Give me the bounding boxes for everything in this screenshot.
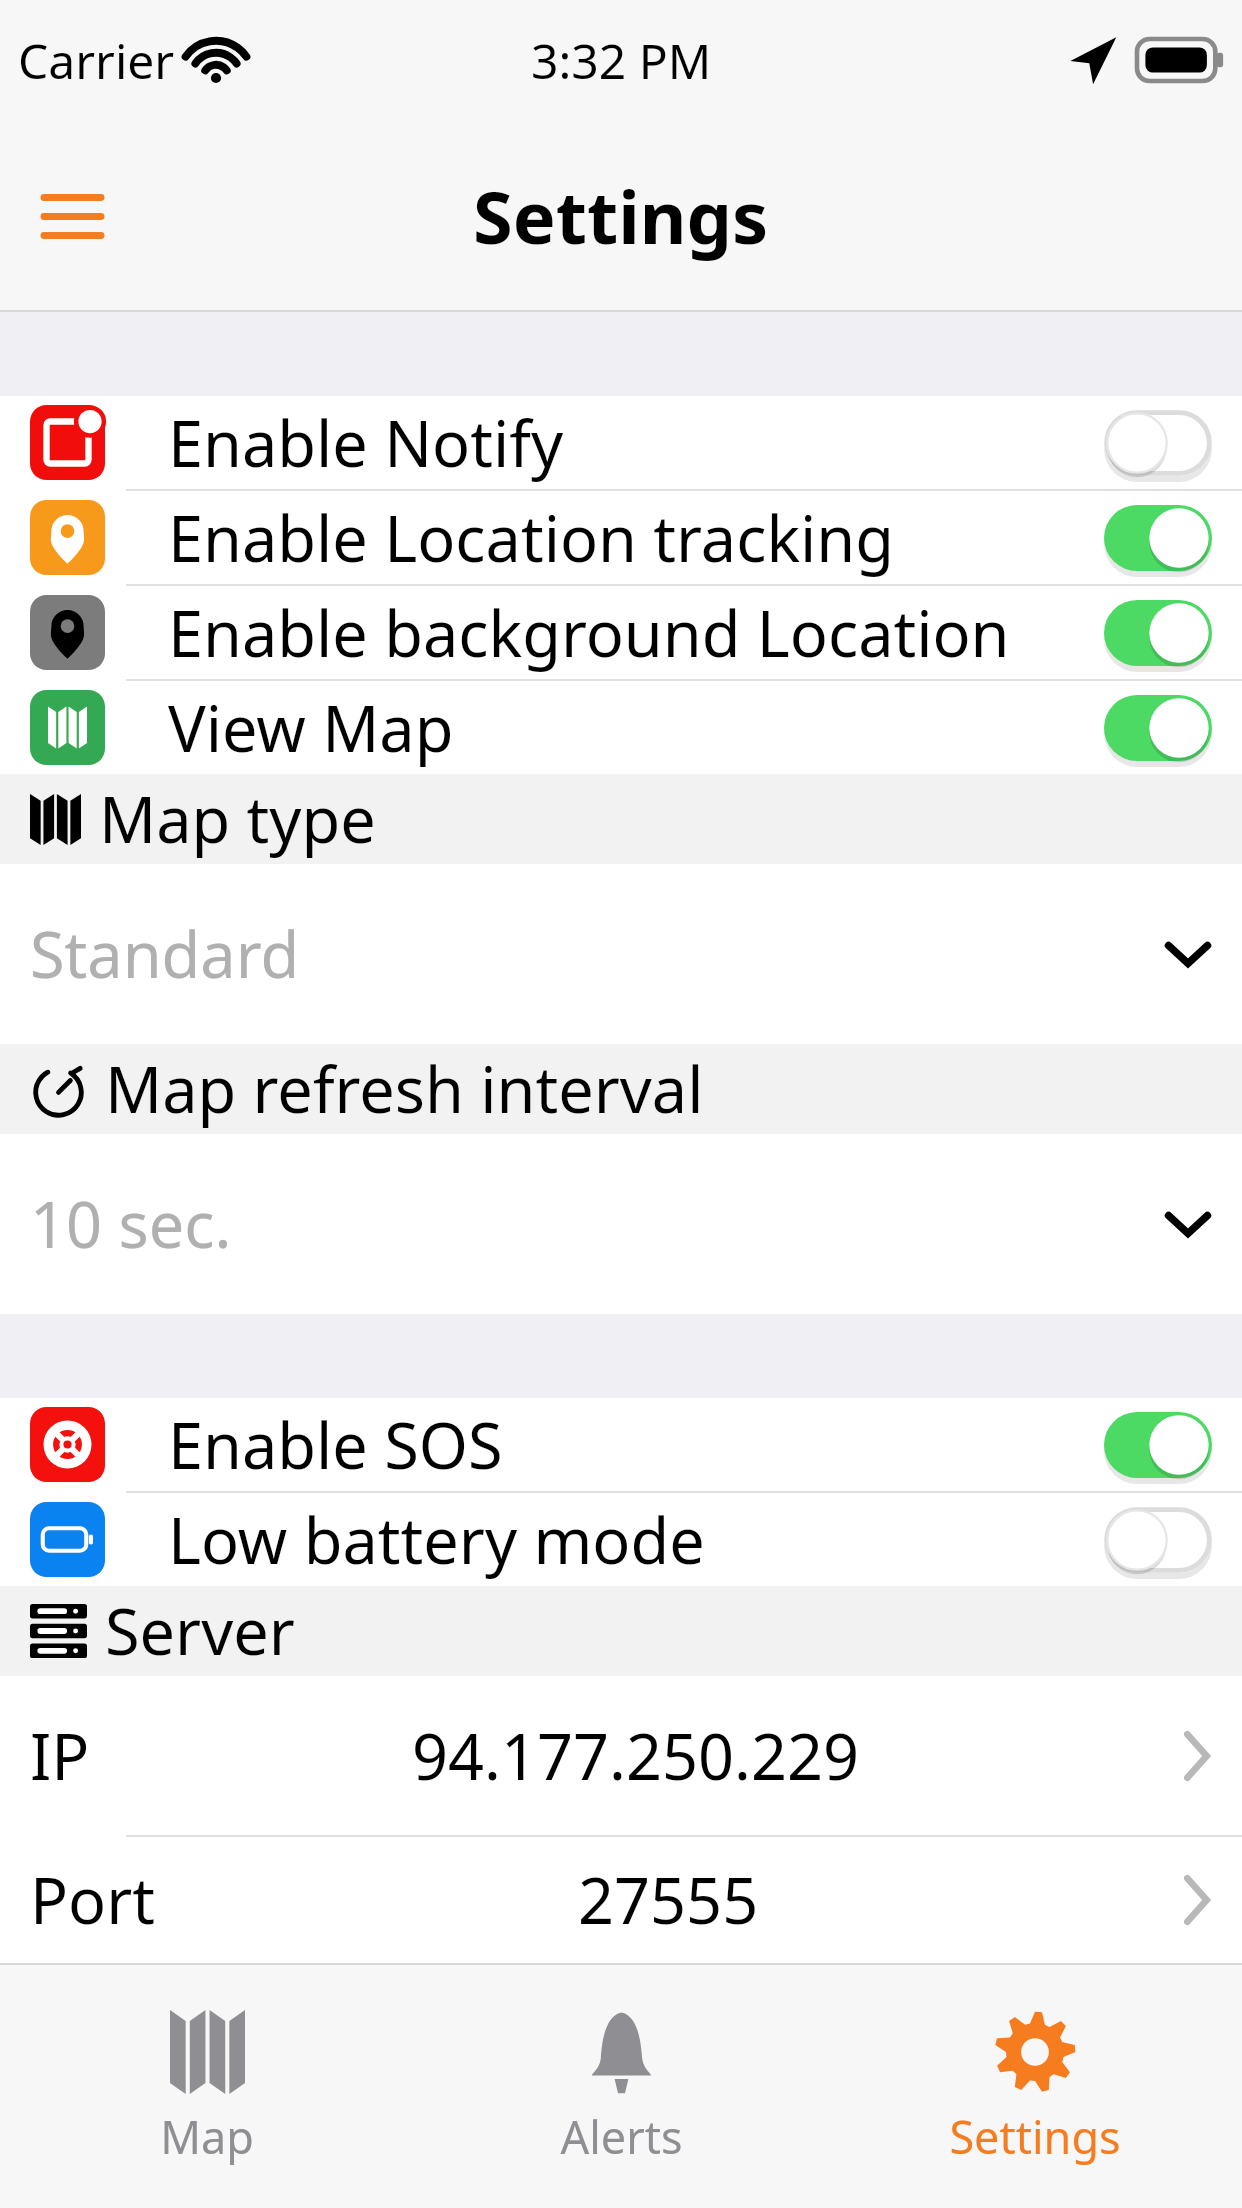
- button[interactable]: Port: [0, 1837, 1242, 1963]
- staticText: 3:32 PM: [531, 28, 712, 93]
- staticText: 94.177.250.229: [412, 1713, 860, 1799]
- staticText: Enable background Location: [168, 590, 1104, 676]
- button[interactable]: Standard: [0, 864, 1242, 1044]
- staticText: Low battery mode: [168, 1497, 1104, 1583]
- staticText: Settings: [949, 2106, 1121, 2167]
- button[interactable]: Menu: [6, 150, 138, 282]
- button[interactable]: On: [1104, 505, 1212, 571]
- button[interactable]: Enable Notify: [0, 396, 1242, 489]
- staticText: Enable SOS: [168, 1402, 1104, 1488]
- button[interactable]: View Map: [0, 681, 1242, 774]
- button[interactable]: Enable Location tracking: [0, 491, 1242, 584]
- staticText: Map refresh interval: [105, 1046, 704, 1132]
- staticText: Map: [160, 2106, 254, 2167]
- button[interactable]: On: [1104, 695, 1212, 761]
- staticText: 27555: [578, 1857, 759, 1943]
- staticText: Map type: [99, 776, 376, 862]
- button[interactable]: IP: [0, 1676, 1242, 1835]
- staticText: Carrier: [18, 28, 175, 93]
- button[interactable]: Map: [0, 1965, 414, 2208]
- staticText: Enable Location tracking: [168, 495, 1104, 581]
- button[interactable]: Off: [1104, 1507, 1212, 1573]
- staticText: Alerts: [560, 2106, 683, 2167]
- button[interactable]: Enable background Location: [0, 586, 1242, 679]
- staticText: IP: [30, 1713, 90, 1799]
- button[interactable]: On: [1104, 1412, 1212, 1478]
- button[interactable]: Alerts: [414, 1965, 828, 2208]
- staticText: Standard: [30, 911, 1164, 997]
- staticText: Server: [105, 1588, 295, 1674]
- staticText: Port: [30, 1857, 155, 1943]
- button[interactable]: Settings: [828, 1965, 1242, 2208]
- button[interactable]: Off: [1104, 410, 1212, 476]
- staticText: View Map: [168, 685, 1104, 771]
- button[interactable]: On: [1104, 600, 1212, 666]
- button[interactable]: Low battery mode: [0, 1493, 1242, 1586]
- staticText: 10 sec.: [30, 1181, 1164, 1267]
- staticText: Enable Notify: [168, 400, 1104, 486]
- button[interactable]: Enable SOS: [0, 1398, 1242, 1491]
- staticText: Settings: [473, 167, 769, 265]
- button[interactable]: 10 sec.: [0, 1134, 1242, 1314]
